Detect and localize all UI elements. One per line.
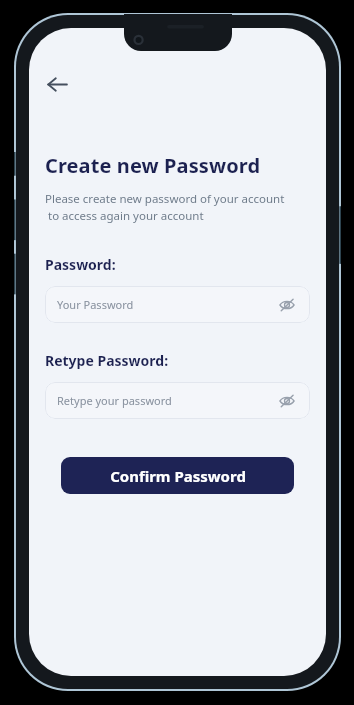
button[interactable]: Show password	[276, 294, 298, 316]
button[interactable]: Show password	[276, 390, 298, 412]
button[interactable]: Retype your password	[45, 382, 310, 419]
staticText: Retype Password:	[45, 351, 169, 370]
button[interactable]: Back	[37, 64, 77, 104]
button[interactable]: Your Password	[45, 286, 310, 323]
staticText: Confirm Password	[110, 466, 246, 486]
staticText: Retype your password	[57, 393, 276, 408]
staticText: Please create new password of your accou…	[45, 191, 285, 224]
staticText: Create new Password	[45, 152, 261, 179]
button[interactable]: Confirm Password	[61, 457, 294, 494]
staticText: Password:	[45, 255, 116, 274]
staticText: Your Password	[57, 297, 276, 312]
